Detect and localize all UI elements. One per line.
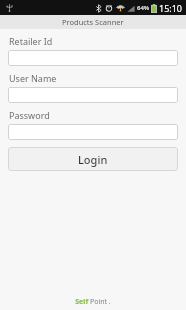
staticText: Retailer Id bbox=[9, 35, 53, 47]
button[interactable] bbox=[8, 50, 178, 66]
button[interactable] bbox=[8, 124, 178, 140]
button[interactable] bbox=[8, 87, 178, 103]
staticText: Password bbox=[9, 109, 50, 121]
staticText: Login bbox=[78, 152, 108, 167]
staticText: Self Point . bbox=[75, 297, 111, 307]
staticText: Products Scanner bbox=[62, 17, 124, 27]
staticText: User Name bbox=[9, 72, 57, 84]
button[interactable]: Login bbox=[8, 147, 178, 171]
staticText: 64% bbox=[137, 4, 150, 12]
staticText: 15:10 bbox=[159, 2, 183, 14]
